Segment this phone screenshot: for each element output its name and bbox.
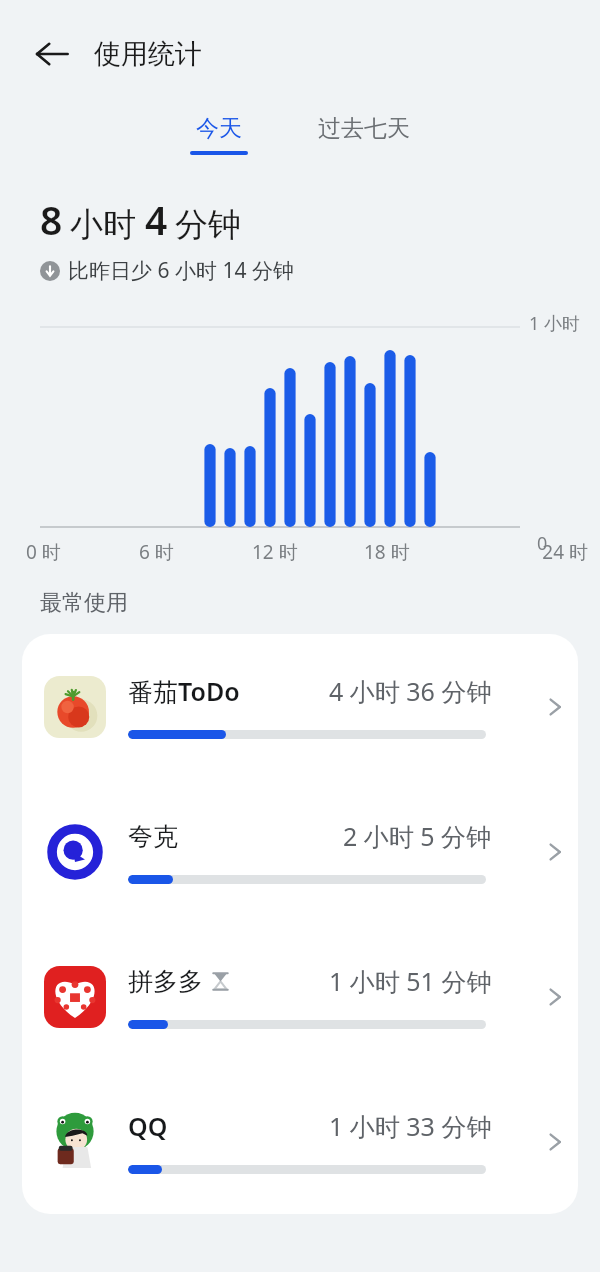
button[interactable]: QQ: [22, 1069, 578, 1214]
staticText: 夸克: [128, 821, 178, 852]
staticText: 4: [145, 193, 168, 246]
button[interactable]: Back: [26, 28, 78, 80]
staticText: 1 小时 51 分钟: [329, 964, 492, 998]
staticText: 分钟: [175, 204, 241, 246]
staticText: 0: [537, 531, 548, 556]
staticText: QQ: [128, 1109, 168, 1143]
staticText: 今天: [196, 114, 242, 143]
staticText: 最常使用: [40, 589, 128, 617]
staticText: 过去七天: [318, 114, 410, 143]
staticText: 拼多多: [128, 966, 203, 997]
staticText: 2 小时 5 分钟: [343, 819, 492, 853]
staticText: 小时: [70, 204, 136, 246]
staticText: 24 时: [476, 539, 588, 565]
button[interactable]: 夸克: [22, 779, 578, 924]
button[interactable]: 番茄ToDo: [22, 634, 578, 779]
staticText: 1 小时: [529, 311, 580, 336]
staticText: 比昨日少 6 小时 14 分钟: [68, 256, 294, 285]
staticText: 18 时: [364, 539, 476, 565]
staticText: 6 时: [139, 539, 252, 565]
staticText: 1 小时 33 分钟: [329, 1109, 492, 1143]
button[interactable]: 拼多多: [22, 924, 578, 1069]
button[interactable]: 过去七天: [310, 108, 418, 149]
button[interactable]: 今天: [182, 108, 256, 161]
staticText: 0 时: [26, 539, 139, 565]
staticText: 8: [40, 193, 63, 246]
staticText: 4 小时 36 分钟: [329, 674, 492, 708]
staticText: 12 时: [252, 539, 364, 565]
staticText: 番茄ToDo: [128, 674, 240, 708]
staticText: 使用统计: [94, 37, 202, 71]
